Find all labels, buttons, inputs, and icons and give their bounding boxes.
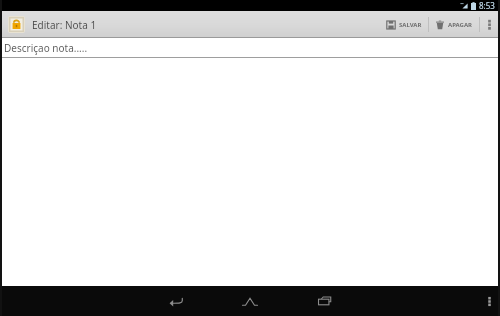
- staticText: APAGAR: [448, 21, 473, 29]
- button[interactable]: APAGAR: [429, 11, 479, 38]
- button[interactable]: Back: [154, 286, 198, 316]
- button[interactable]: More options: [480, 11, 498, 38]
- button[interactable]: Home: [228, 286, 272, 316]
- button[interactable]: SALVAR: [380, 11, 428, 38]
- staticText: 8:53: [479, 0, 495, 11]
- staticText: Descriçao nota.....: [4, 41, 88, 55]
- button[interactable]: Recent apps: [302, 286, 346, 316]
- button[interactable]: Descriçao nota.....: [0, 41, 500, 58]
- button[interactable]: More options: [478, 286, 500, 316]
- staticText: SALVAR: [399, 21, 422, 29]
- staticText: Editar: Nota 1: [32, 18, 97, 32]
